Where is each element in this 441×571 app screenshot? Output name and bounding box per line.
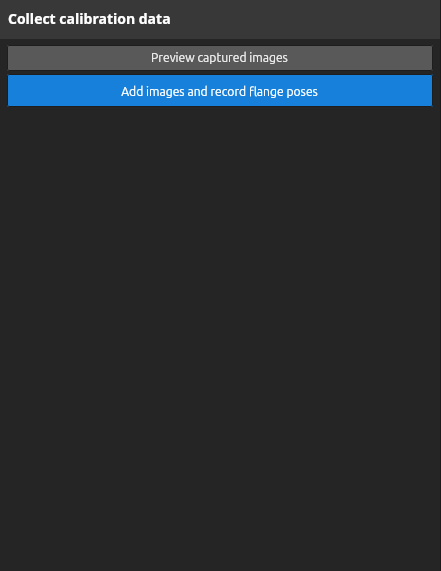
button[interactable]: Add images and record flange poses xyxy=(7,74,433,107)
button[interactable]: Preview captured images xyxy=(7,45,433,71)
staticText: Collect calibration data xyxy=(8,9,171,28)
staticText: Preview captured images xyxy=(151,51,288,65)
staticText: Add images and record flange poses xyxy=(121,85,318,99)
